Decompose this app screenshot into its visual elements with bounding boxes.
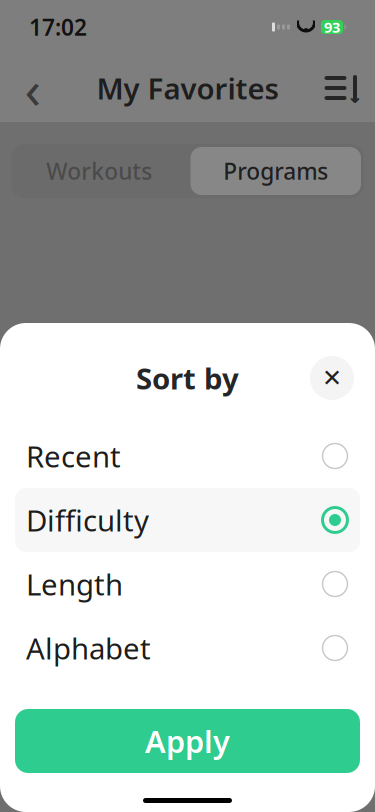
staticText: Recent <box>26 436 121 475</box>
staticText: Alphabet <box>26 628 151 667</box>
staticText: Sort by <box>136 358 239 397</box>
button[interactable]: Back <box>10 65 56 111</box>
button[interactable]: Workouts <box>11 147 187 195</box>
button[interactable]: Sort <box>319 65 365 111</box>
button[interactable]: Programs <box>190 147 361 195</box>
staticText: ⌄ <box>346 85 363 107</box>
button[interactable]: Length <box>15 552 360 616</box>
staticText: Difficulty <box>26 500 149 539</box>
button[interactable]: Close <box>310 356 354 400</box>
staticText: Length <box>26 564 123 603</box>
staticText: Workouts <box>46 156 152 186</box>
button[interactable]: Apply <box>15 709 360 773</box>
staticText: 17:02 <box>29 12 87 42</box>
staticText: My Favorites <box>96 68 278 107</box>
staticText: Apply <box>145 721 230 761</box>
staticText: 93 <box>324 17 340 37</box>
button[interactable]: Alphabet <box>15 616 360 680</box>
staticText: ‹ <box>24 53 41 123</box>
button[interactable]: Difficulty <box>15 488 360 552</box>
staticText: Programs <box>223 156 328 186</box>
button[interactable]: Recent <box>15 424 360 488</box>
staticText: ✕ <box>322 364 342 392</box>
